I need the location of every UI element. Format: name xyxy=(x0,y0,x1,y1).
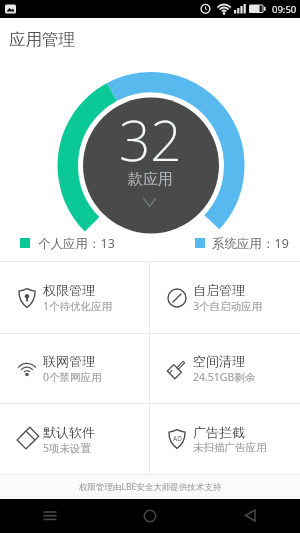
button[interactable] xyxy=(200,499,300,533)
staticText: 32 xyxy=(119,102,182,170)
staticText: 权限管理由LBE安全大师提供技术支持 xyxy=(79,481,222,493)
staticText: 09:50 xyxy=(272,3,297,16)
button[interactable]: 联网管理 xyxy=(0,334,149,403)
button[interactable]: 空间清理 xyxy=(150,334,299,403)
button[interactable] xyxy=(83,97,219,233)
button[interactable]: AD xyxy=(150,404,299,474)
staticText: 24.51GB剩余 xyxy=(193,370,256,384)
button[interactable]: 自启管理 xyxy=(150,262,299,333)
staticText: 1个待优化应用 xyxy=(43,299,113,313)
button[interactable] xyxy=(0,499,100,533)
staticText: 系统应用：19 xyxy=(212,235,289,252)
staticText: 未扫描广告应用 xyxy=(193,441,267,454)
staticText: 自启管理 xyxy=(193,282,245,298)
staticText: 个人应用：13 xyxy=(38,235,115,252)
staticText: AD xyxy=(173,434,182,443)
button[interactable]: 权限管理 xyxy=(0,262,149,333)
staticText: 0个禁网应用 xyxy=(43,370,102,384)
button[interactable] xyxy=(100,499,200,533)
staticText: 3个自启动应用 xyxy=(193,299,263,313)
staticText: 广告拦截 xyxy=(193,424,245,440)
staticText: 权限管理 xyxy=(43,282,95,298)
staticText: 空间清理 xyxy=(193,353,245,369)
staticText: 5项未设置 xyxy=(43,441,92,455)
staticText: 默认软件 xyxy=(43,424,95,440)
staticText: 款应用 xyxy=(128,170,173,189)
staticText: 联网管理 xyxy=(43,353,95,369)
staticText: 应用管理 xyxy=(9,29,75,50)
button[interactable]: 默认软件 xyxy=(0,404,149,474)
